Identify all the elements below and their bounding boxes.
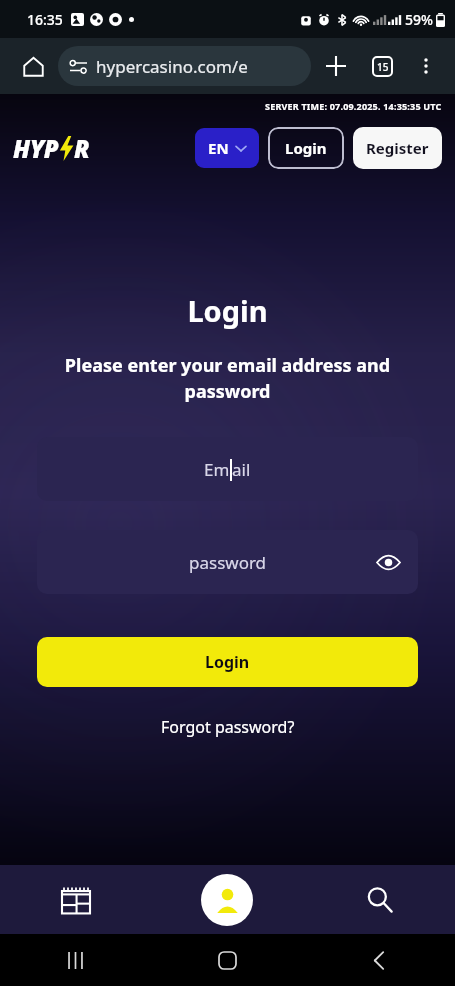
button[interactable]: Home <box>151 934 303 986</box>
button[interactable]: Profile <box>151 865 303 934</box>
button[interactable]: Back <box>303 934 455 986</box>
staticText: Login <box>0 291 455 330</box>
staticText: password <box>189 551 267 574</box>
staticText: HYP <box>13 132 59 165</box>
staticText: Forgot password? <box>161 716 295 738</box>
staticText: Login <box>285 138 327 158</box>
staticText: R <box>74 132 90 165</box>
button[interactable]: New tab <box>315 45 357 87</box>
button[interactable]: Show password <box>368 542 408 582</box>
staticText: hypercasino.com/e <box>96 55 248 78</box>
button[interactable]: Tabs: 15 <box>361 45 403 87</box>
staticText: 15 <box>377 60 389 74</box>
button[interactable]: Register <box>353 127 442 169</box>
button[interactable]: Login <box>37 637 418 687</box>
button[interactable]: Search <box>303 865 455 934</box>
button[interactable]: More options <box>405 45 447 87</box>
button[interactable]: News <box>0 865 151 934</box>
staticText: 16:35 <box>27 10 63 29</box>
button[interactable]: Forgot password? <box>151 711 305 743</box>
button[interactable]: hypercasino.com/e <box>58 46 311 86</box>
staticText: Em <box>204 458 230 481</box>
button[interactable]: Em <box>37 437 418 501</box>
button[interactable]: password <box>37 530 418 594</box>
button[interactable]: Home <box>14 47 52 85</box>
staticText: ail <box>232 458 251 481</box>
staticText: 59% <box>405 10 433 29</box>
staticText: Please enter your email address and pass… <box>26 353 429 404</box>
button[interactable]: Recent apps <box>0 934 151 986</box>
staticText: EN <box>208 138 229 158</box>
staticText: Register <box>366 138 429 158</box>
staticText: SERVER TIME: 07.09.2025. 14:35:35 UTC <box>265 100 442 112</box>
button[interactable]: EN <box>195 128 259 168</box>
staticText: Login <box>205 651 250 673</box>
button[interactable]: Login <box>268 127 344 169</box>
